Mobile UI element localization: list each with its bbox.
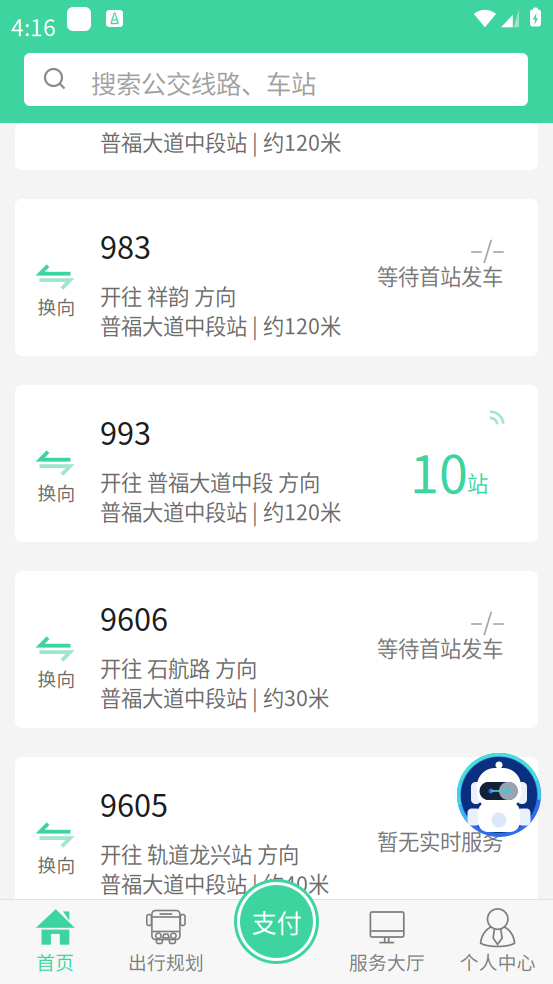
staticText: 换向 xyxy=(37,478,75,505)
button[interactable]: 换向 xyxy=(15,571,538,728)
staticText: 出行规划 xyxy=(128,948,204,975)
staticText: 4:16 xyxy=(11,10,56,43)
staticText: 等待首站发车 xyxy=(377,632,503,663)
staticText: 服务大厅 xyxy=(349,948,425,975)
staticText: 普福大道中段站 | 约120米 xyxy=(100,495,341,526)
staticText: 暂无实时服务 xyxy=(377,825,503,856)
button[interactable]: 个人中心 xyxy=(442,899,553,984)
button[interactable]: 换向 xyxy=(15,385,538,542)
staticText: 普福大道中段站 | 约30米 xyxy=(100,681,329,712)
button[interactable]: 出行规划 xyxy=(111,899,221,984)
button[interactable]: 换向 xyxy=(15,199,538,356)
staticText: 开往 普福大道中段 方向 xyxy=(100,466,320,497)
staticText: –/– xyxy=(470,603,505,638)
staticText: 普福大道中段站 | 约40米 xyxy=(100,867,329,898)
staticText: 首页 xyxy=(36,948,74,975)
staticText: 开往 轨道龙兴站 方向 xyxy=(100,838,299,869)
staticText: 普福大道中段站 | 约120米 xyxy=(100,126,341,157)
staticText: 10 xyxy=(410,433,468,508)
staticText: 9606 xyxy=(100,595,168,640)
staticText: 换向 xyxy=(37,292,75,319)
staticText: A xyxy=(110,6,119,28)
staticText: 开往 祥韵 方向 xyxy=(100,280,236,311)
staticText: 换向 xyxy=(37,664,75,691)
staticText: 普福大道中段站 | 约120米 xyxy=(100,309,341,340)
staticText: 支付 xyxy=(251,903,301,940)
staticText: 9605 xyxy=(100,781,168,826)
button[interactable]: 换向 xyxy=(15,757,538,914)
staticText: 搜索公交线路、车站 xyxy=(91,64,316,101)
staticText: 983 xyxy=(100,223,151,268)
staticText: –/– xyxy=(470,231,505,266)
staticText: 个人中心 xyxy=(460,948,536,975)
button[interactable]: 服务大厅 xyxy=(332,899,442,984)
staticText: 993 xyxy=(100,409,151,454)
button[interactable]: 搜索公交线路、车站 xyxy=(24,53,528,106)
staticText: 开往 石航路 方向 xyxy=(100,652,257,683)
button[interactable]: 首页 xyxy=(0,899,111,984)
staticText: 等待首站发车 xyxy=(377,260,503,291)
staticText: 换向 xyxy=(37,850,75,877)
button[interactable]: 支付 xyxy=(234,879,319,964)
button[interactable]: AI 智能助手 xyxy=(457,753,541,837)
staticText: 站 xyxy=(467,467,488,498)
